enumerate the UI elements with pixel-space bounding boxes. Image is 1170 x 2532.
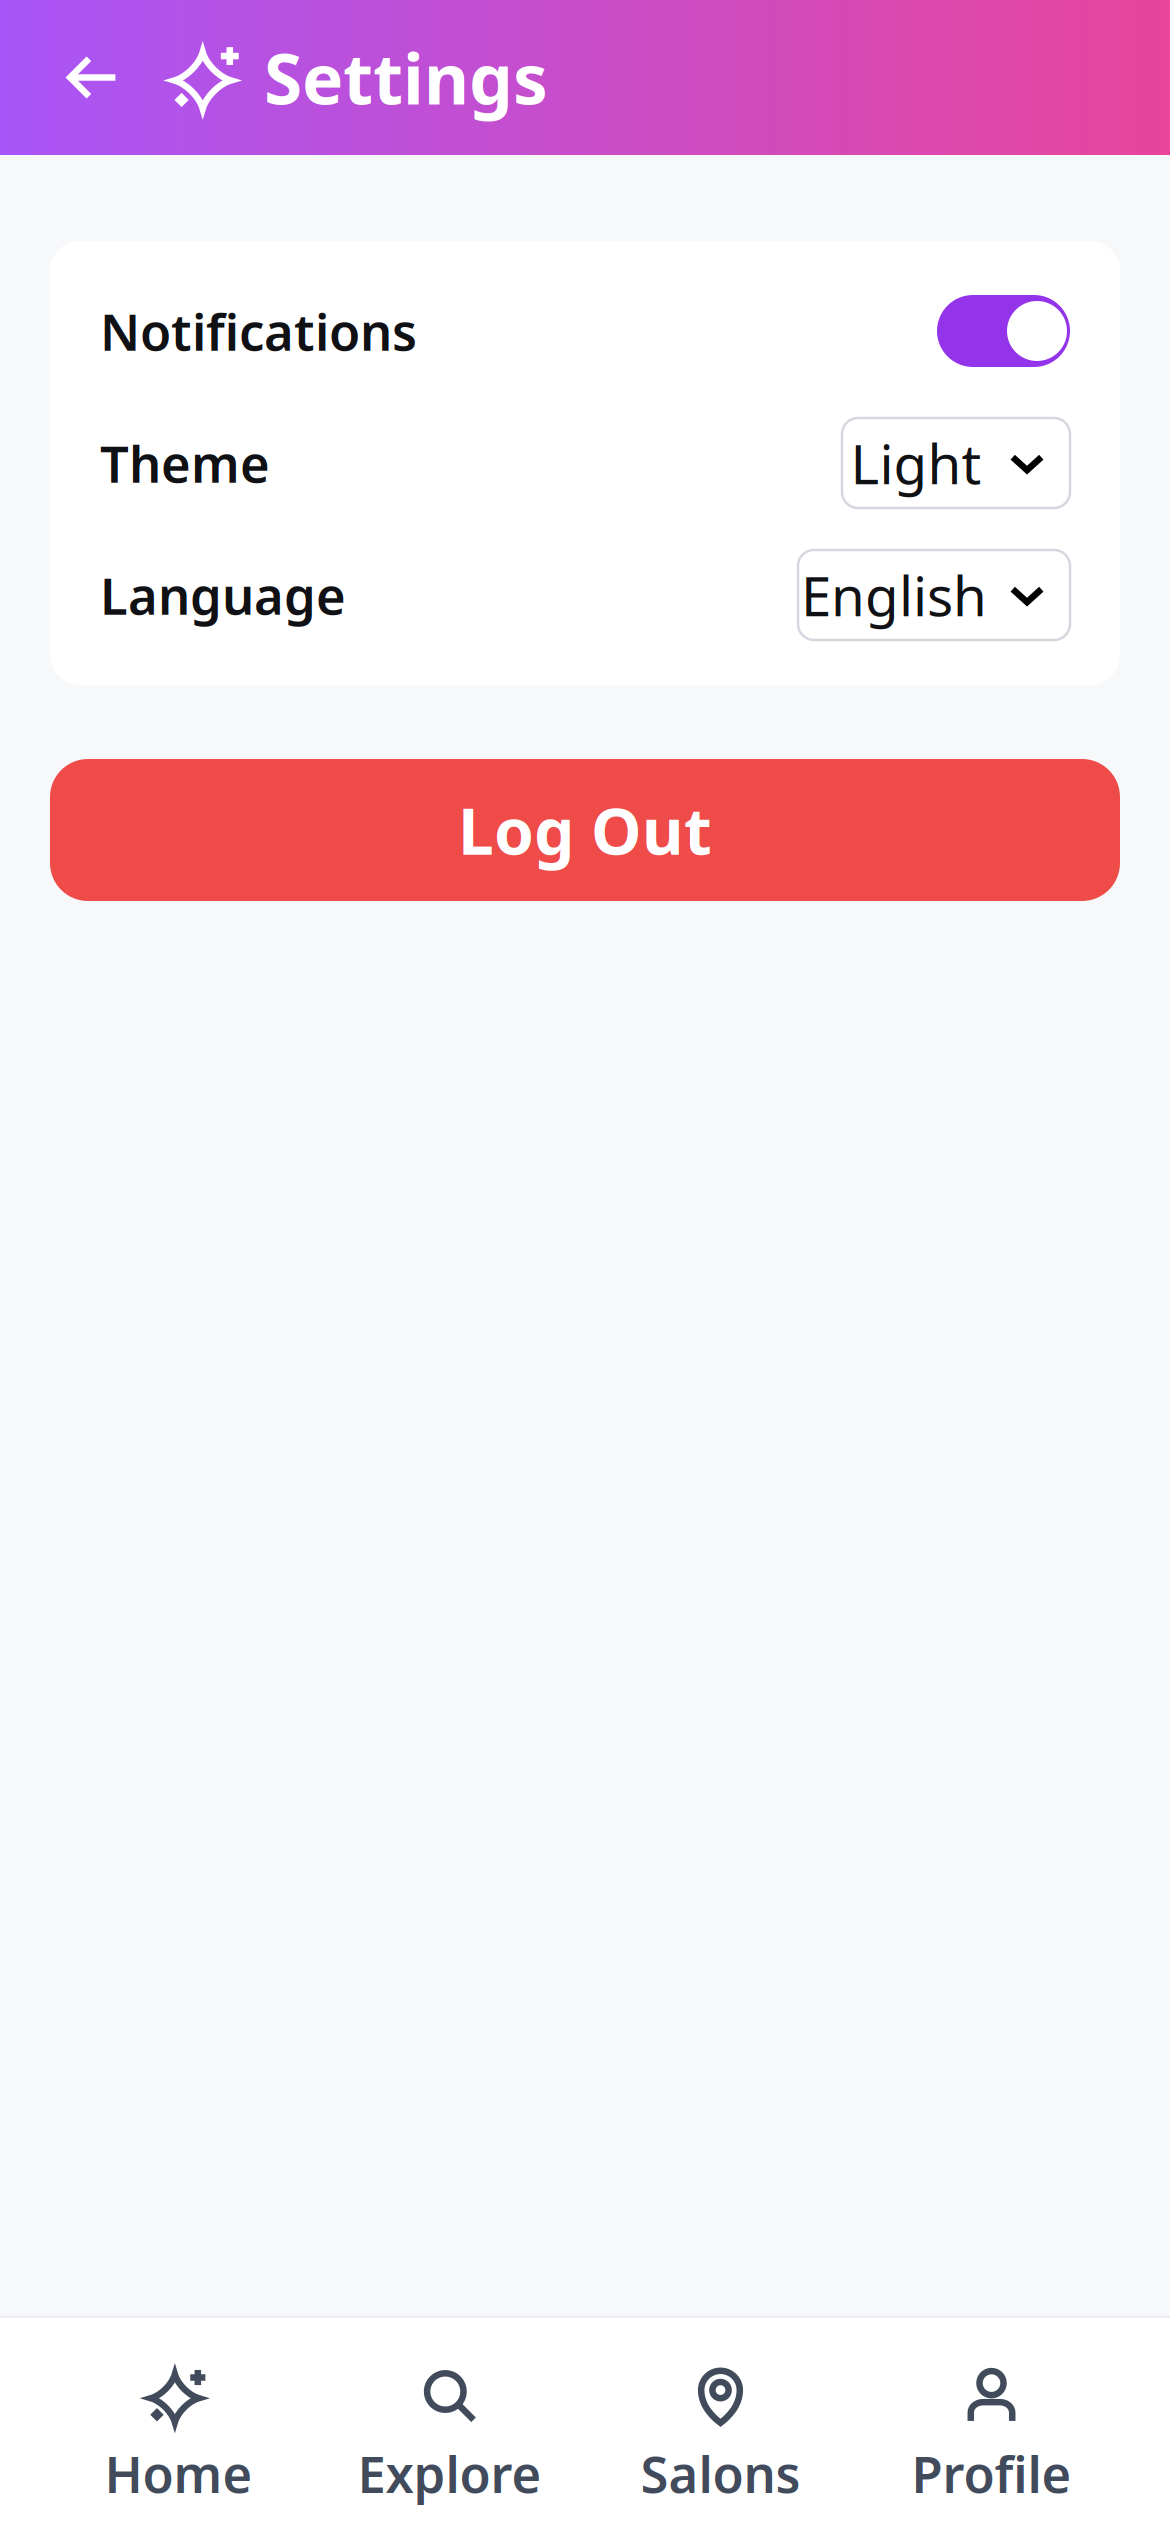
button[interactable]: Salons [585,2368,856,2507]
button[interactable]: Explore [314,2368,585,2507]
staticText: Log Out [458,787,712,872]
staticText: Salons [640,2440,800,2507]
staticText: Profile [911,2440,1071,2507]
button[interactable]: Profile [856,2368,1127,2507]
button[interactable]: Back [52,37,132,117]
staticText: Settings [264,31,548,124]
staticText: Theme [100,429,270,497]
button[interactable]: Home [43,2368,314,2507]
staticText: Light [850,427,981,499]
staticText: Notifications [100,297,417,365]
staticText: Explore [357,2440,541,2507]
staticText: English [801,559,987,631]
staticText: Language [100,561,346,629]
button[interactable]: English [798,550,1070,640]
button[interactable]: Light [842,418,1070,508]
staticText: Home [104,2440,252,2507]
button[interactable]: Notifications, on [937,295,1070,367]
button[interactable]: Log Out [50,759,1120,901]
